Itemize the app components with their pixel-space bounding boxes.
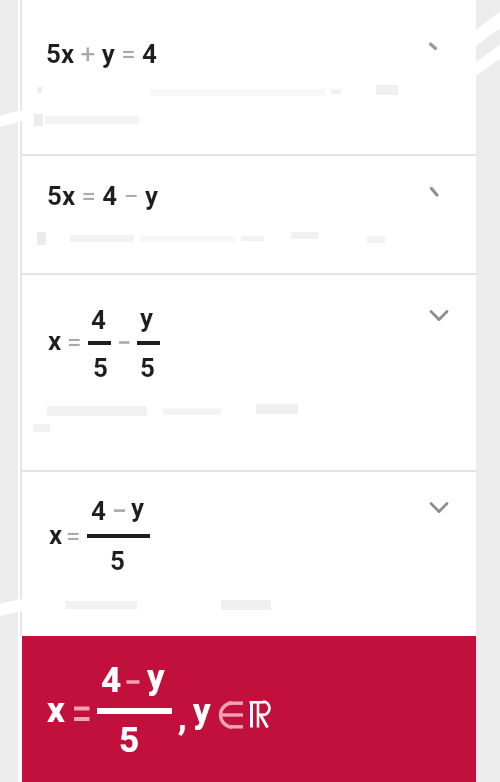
staticText: = xyxy=(67,327,82,357)
staticText: = xyxy=(66,521,81,551)
button[interactable] xyxy=(22,636,476,782)
staticText: 5 xyxy=(110,546,125,576)
staticText: 5 xyxy=(93,353,108,383)
staticText: 4 xyxy=(101,660,122,701)
staticText: x xyxy=(49,520,63,550)
staticText: x xyxy=(48,326,62,356)
staticText: 4 xyxy=(91,496,106,526)
button[interactable] xyxy=(22,0,476,154)
staticText: y xyxy=(131,493,145,523)
staticText: 5x = 4 − y xyxy=(47,181,159,211)
staticText: y xyxy=(147,657,165,698)
staticText: 4 xyxy=(91,305,106,335)
staticText: y xyxy=(193,691,211,732)
button[interactable] xyxy=(22,275,476,470)
staticText: x xyxy=(47,690,65,731)
staticText: 5 xyxy=(140,353,155,383)
staticText: y xyxy=(140,303,154,333)
staticText: 5 xyxy=(119,720,140,761)
button[interactable] xyxy=(22,156,476,273)
staticText: 5x + y = 4 xyxy=(46,39,157,69)
button[interactable] xyxy=(22,472,476,636)
staticText: , xyxy=(178,697,187,738)
